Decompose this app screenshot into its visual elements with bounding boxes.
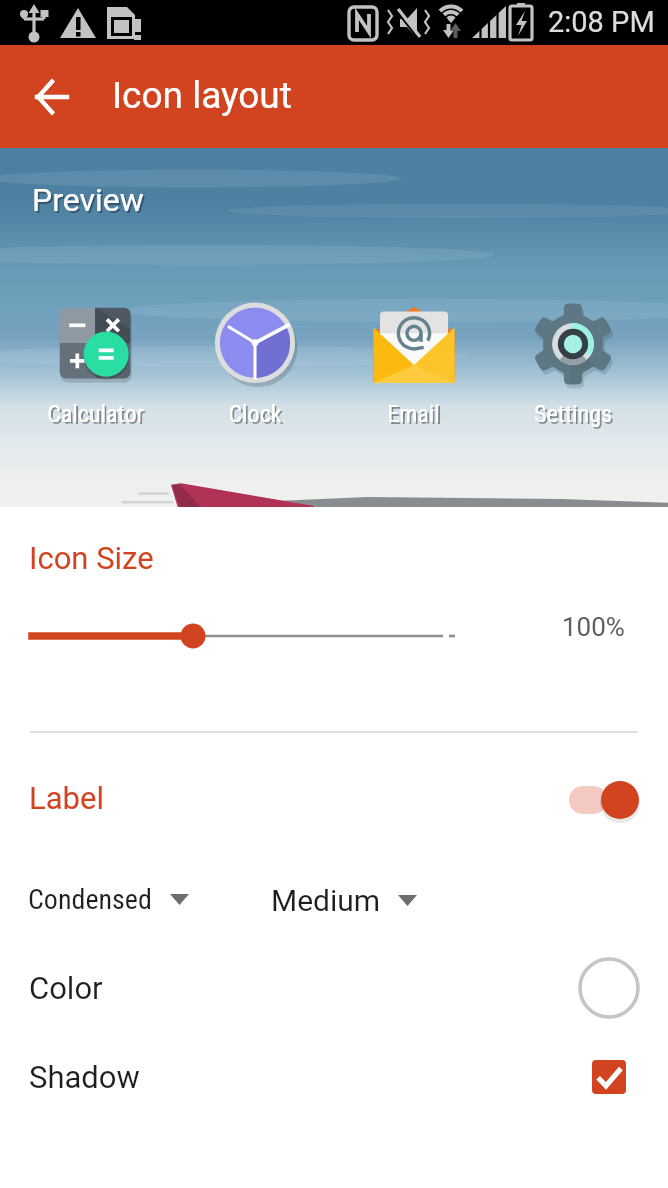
staticText: 100% bbox=[562, 612, 625, 642]
staticText: Clock bbox=[228, 400, 282, 428]
staticText: Preview bbox=[34, 183, 146, 221]
staticText: Condensed bbox=[28, 883, 152, 916]
button[interactable]: Font family: Condensed bbox=[28, 883, 189, 916]
staticText: Preview bbox=[32, 181, 144, 219]
button[interactable]: Icon size bbox=[0, 507, 668, 731]
staticText: Calculator bbox=[47, 400, 144, 428]
button[interactable]: Label bbox=[0, 754, 668, 846]
staticText: Email bbox=[389, 402, 442, 430]
staticText: Email bbox=[387, 400, 440, 428]
staticText: Settings bbox=[534, 400, 612, 428]
staticText: Label bbox=[29, 780, 104, 816]
button[interactable]: Clock bbox=[175, 303, 334, 428]
staticText: Icon Size bbox=[29, 540, 154, 576]
staticText: Settings bbox=[536, 402, 614, 430]
staticText: 2:08 PM bbox=[548, 5, 655, 39]
staticText: Calculator bbox=[49, 402, 146, 430]
button[interactable]: Settings bbox=[493, 303, 652, 428]
staticText: Medium bbox=[271, 883, 381, 918]
button[interactable]: Color bbox=[0, 943, 668, 1033]
staticText: Icon layout bbox=[112, 74, 292, 117]
staticText: Color bbox=[29, 970, 103, 1006]
button[interactable]: Shadow bbox=[0, 1032, 668, 1122]
button[interactable]: Font weight: Medium bbox=[271, 883, 417, 918]
button[interactable]: Email bbox=[334, 303, 493, 428]
button[interactable]: Navigate up bbox=[18, 63, 86, 131]
staticText: Clock bbox=[230, 402, 284, 430]
staticText: Shadow bbox=[29, 1059, 140, 1095]
button[interactable]: Calculator bbox=[16, 303, 175, 428]
